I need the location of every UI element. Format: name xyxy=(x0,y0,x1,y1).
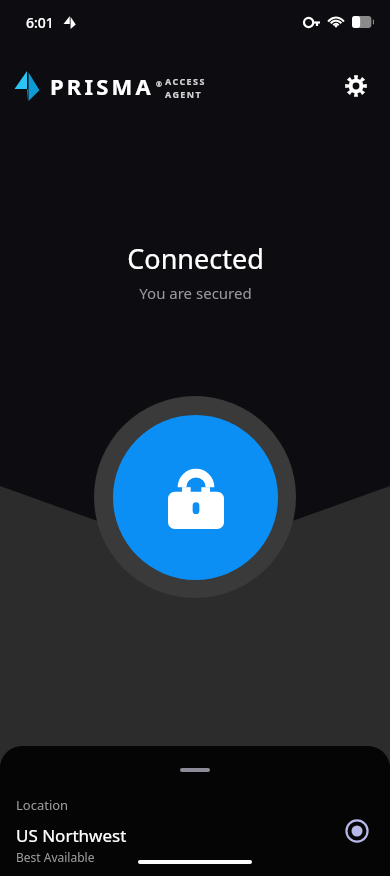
button[interactable]: Settings xyxy=(334,64,378,108)
button[interactable]: Disconnect VPN xyxy=(94,396,296,598)
button[interactable]: Location xyxy=(0,790,390,871)
staticText: Location xyxy=(16,796,69,814)
staticText: ® xyxy=(156,80,162,90)
staticText: 6:01 xyxy=(26,13,54,32)
button[interactable]: Selected location xyxy=(340,814,374,848)
staticText: You are secured xyxy=(139,283,252,303)
staticText: AGENT xyxy=(165,88,203,100)
staticText: ACCESS xyxy=(165,75,206,87)
staticText: US Northwest xyxy=(16,824,127,847)
staticText: Connected xyxy=(127,240,264,277)
staticText: PRISMA xyxy=(50,71,154,101)
staticText: Best Available xyxy=(16,849,95,865)
